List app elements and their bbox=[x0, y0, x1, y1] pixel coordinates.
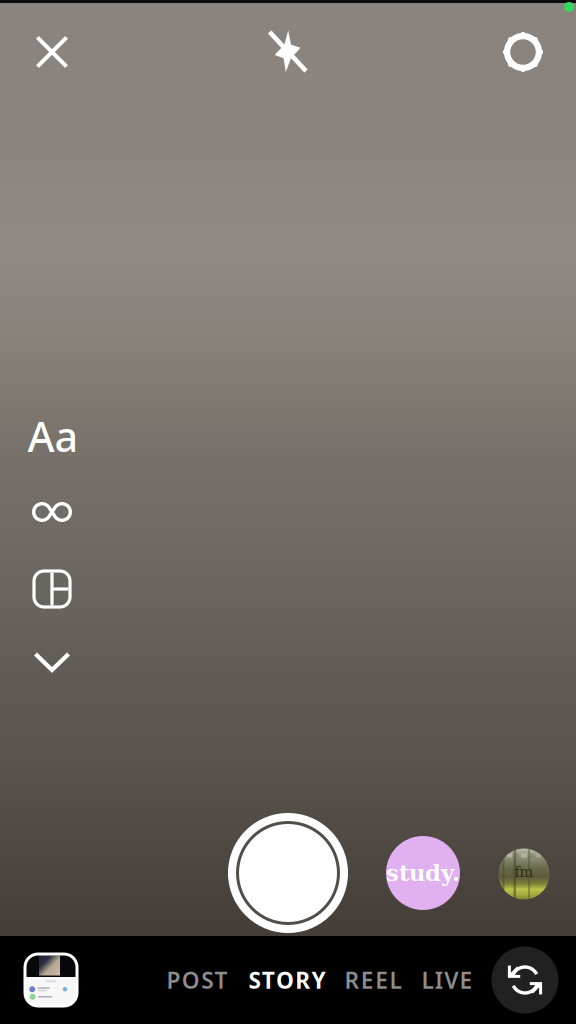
staticText: POST bbox=[167, 965, 227, 995]
button[interactable]: STORY bbox=[239, 958, 335, 1002]
button[interactable]: Switch camera bbox=[492, 947, 558, 1013]
staticText: study. bbox=[386, 860, 460, 886]
button[interactable]: More options bbox=[20, 630, 84, 694]
staticText: Aa bbox=[27, 409, 78, 463]
button[interactable]: LIVE bbox=[410, 958, 484, 1002]
button[interactable]: study. bbox=[386, 836, 460, 910]
staticText: STORY bbox=[248, 965, 326, 995]
staticText: REEL bbox=[345, 965, 401, 995]
button[interactable]: Layout bbox=[20, 557, 84, 621]
button[interactable]: REEL bbox=[334, 958, 412, 1002]
button[interactable]: Gallery bbox=[18, 947, 84, 1013]
button[interactable]: Capture bbox=[228, 813, 348, 933]
button[interactable]: Text bbox=[21, 404, 85, 468]
staticText: LIVE bbox=[422, 965, 472, 995]
button[interactable]: Camera settings bbox=[491, 20, 555, 84]
button[interactable]: Boomerang bbox=[20, 480, 84, 544]
button[interactable]: Effects bbox=[498, 848, 549, 899]
button[interactable]: Close bbox=[20, 20, 84, 84]
staticText: fm bbox=[514, 863, 533, 881]
button[interactable]: Flash off bbox=[256, 20, 320, 84]
button[interactable]: POST bbox=[156, 958, 238, 1002]
